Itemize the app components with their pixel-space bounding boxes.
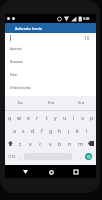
staticText: Ea [18, 100, 23, 106]
staticText: Aukeratu herria [15, 26, 43, 31]
staticText: i [73, 114, 75, 121]
button[interactable]: Beizama [5, 55, 96, 68]
staticText: r [36, 114, 39, 121]
button[interactable]: Era [66, 96, 96, 110]
staticText: x [29, 140, 32, 147]
button[interactable]: h [55, 124, 64, 137]
staticText: Beizama [10, 60, 23, 64]
button[interactable]: k [73, 124, 82, 137]
staticText: l [86, 127, 88, 134]
button[interactable]: Shift [5, 137, 16, 150]
staticText: n [68, 140, 72, 147]
staticText: k [76, 127, 79, 134]
staticText: u [63, 114, 67, 121]
staticText: d [31, 127, 35, 134]
button[interactable]: v [45, 137, 55, 150]
button[interactable]: Ea [5, 96, 36, 110]
staticText: v [49, 140, 52, 147]
staticText: s [22, 127, 25, 134]
button[interactable]: l [82, 124, 91, 137]
button[interactable]: t [42, 111, 51, 124]
staticText: o [81, 114, 85, 121]
button[interactable]: Recents [70, 166, 82, 178]
staticText: Eta [48, 100, 55, 106]
button[interactable]: Eta [36, 96, 66, 110]
button[interactable]: u [60, 111, 69, 124]
button[interactable]: , [17, 150, 24, 163]
staticText: b [58, 140, 62, 147]
button[interactable]: f [37, 124, 46, 137]
button[interactable]: w [15, 111, 24, 124]
staticText: t [46, 114, 48, 121]
staticText: q [8, 114, 12, 121]
button[interactable]: g [46, 124, 55, 137]
staticText: p [90, 114, 94, 121]
staticText: . [80, 154, 82, 160]
staticText: j [68, 127, 70, 134]
button[interactable]: Search [85, 153, 92, 160]
button[interactable]: Azpeitia [5, 42, 96, 55]
button[interactable]: z [16, 137, 25, 150]
staticText: ?123 [8, 154, 16, 159]
button[interactable]: Eibar [5, 68, 96, 81]
button[interactable]: m [75, 137, 85, 150]
staticText: , [20, 154, 22, 160]
staticText: y [54, 114, 57, 121]
button[interactable]: Home [45, 166, 57, 178]
staticText: Eibar [10, 73, 18, 77]
staticText: 9:38 [83, 17, 90, 21]
button[interactable]: Back [19, 166, 31, 178]
staticText: Era [78, 100, 85, 106]
staticText: z [19, 140, 22, 147]
button[interactable]: p [87, 111, 96, 124]
button[interactable]: d [28, 124, 37, 137]
button[interactable]: a [10, 124, 19, 137]
button[interactable]: j [64, 124, 73, 137]
button[interactable]: n [65, 137, 75, 150]
staticText: c [39, 140, 42, 147]
button[interactable]: 10 [5, 33, 96, 42]
staticText: w [17, 114, 22, 121]
button[interactable]: ?123 [6, 150, 17, 163]
button[interactable]: s [19, 124, 28, 137]
button[interactable]: . [77, 150, 84, 163]
staticText: 10 [84, 35, 90, 41]
button[interactable]: Erribera beitia [5, 81, 96, 94]
staticText: a [13, 127, 16, 134]
staticText: g [49, 127, 53, 134]
button[interactable]: y [51, 111, 60, 124]
button[interactable]: b [55, 137, 65, 150]
staticText: Azpeitia [10, 47, 22, 51]
staticText: e [27, 114, 30, 121]
button[interactable]: r [33, 111, 42, 124]
staticText: m [78, 140, 83, 147]
staticText: h [58, 127, 62, 134]
button[interactable]: Backspace [85, 137, 96, 150]
button[interactable]: e [24, 111, 33, 124]
button[interactable]: c [35, 137, 45, 150]
staticText: f [41, 127, 43, 134]
button[interactable]: x [25, 137, 35, 150]
staticText: Erribera beitia [10, 86, 31, 90]
button[interactable]: q [5, 111, 15, 124]
button[interactable]: o [78, 111, 87, 124]
button[interactable]: i [69, 111, 78, 124]
